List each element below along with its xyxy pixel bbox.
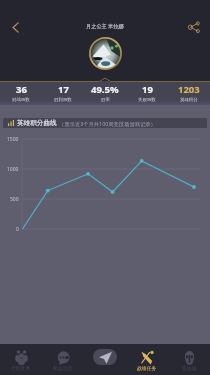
button[interactable]: Messages xyxy=(84,344,126,375)
staticText: 社区世界 xyxy=(11,365,31,371)
staticText: 36 xyxy=(16,83,27,96)
staticText: 月之公主 米拉娜 xyxy=(86,22,124,29)
button[interactable]: 战绩任务 xyxy=(126,344,168,375)
staticText: 1500 xyxy=(7,136,19,142)
button[interactable]: 竞技场 xyxy=(168,344,210,375)
staticText: 17 xyxy=(58,83,69,96)
staticText: （显示近3个月共100局竞技场游戏记录） xyxy=(59,120,156,127)
staticText: 英雄积分曲线 xyxy=(17,119,57,127)
button[interactable]: 17 xyxy=(42,81,84,105)
button[interactable]: 私信消息 xyxy=(42,344,84,375)
button[interactable]: 英雄积分曲线 xyxy=(3,118,207,128)
button[interactable]: 1203 xyxy=(168,81,210,105)
button[interactable]: 49.5% xyxy=(84,81,126,105)
staticText: 19 xyxy=(142,83,153,96)
staticText: 胜利局数 xyxy=(54,97,72,103)
staticText: 0 xyxy=(16,226,19,232)
staticText: 对战局数 xyxy=(12,97,30,103)
staticText: 49.5% xyxy=(91,83,119,96)
button[interactable]: Back xyxy=(2,14,28,40)
button[interactable]: 社区世界 xyxy=(0,344,42,375)
button[interactable]: Share xyxy=(181,14,207,40)
staticText: 1000 xyxy=(7,166,19,172)
button[interactable]: 19 xyxy=(126,81,168,105)
staticText: 英雄积分 xyxy=(180,97,198,103)
staticText: 1203 xyxy=(178,83,200,96)
staticText: 失败局数 xyxy=(138,97,156,103)
staticText: 战绩任务 xyxy=(137,365,157,371)
staticText: 私信消息 xyxy=(53,365,73,371)
staticText: 胜率 xyxy=(101,97,110,103)
staticText: 500 xyxy=(10,196,19,202)
staticText: 竞技场 xyxy=(182,365,197,371)
button[interactable]: 36 xyxy=(0,81,42,105)
